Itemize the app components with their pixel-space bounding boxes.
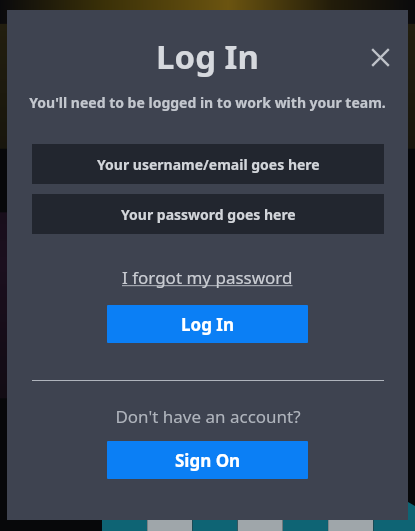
staticText: Sign On <box>175 449 241 472</box>
button[interactable]: Your password goes here <box>32 194 384 234</box>
staticText: Your password goes here <box>121 205 296 224</box>
button[interactable]: Sign On <box>107 441 308 479</box>
staticText: Don't have an account? <box>115 405 301 428</box>
button[interactable]: Close <box>362 39 398 75</box>
staticText: Your username/email goes here <box>97 155 320 174</box>
staticText: Log In <box>181 313 234 336</box>
button[interactable]: Log In <box>107 305 308 343</box>
staticText: You'll need to be logged in to work with… <box>29 93 386 112</box>
staticText: I forgot my password <box>122 266 293 289</box>
staticText: Log In <box>156 34 259 79</box>
button[interactable]: I forgot my password <box>114 262 301 293</box>
button[interactable]: Your username/email goes here <box>32 144 384 184</box>
